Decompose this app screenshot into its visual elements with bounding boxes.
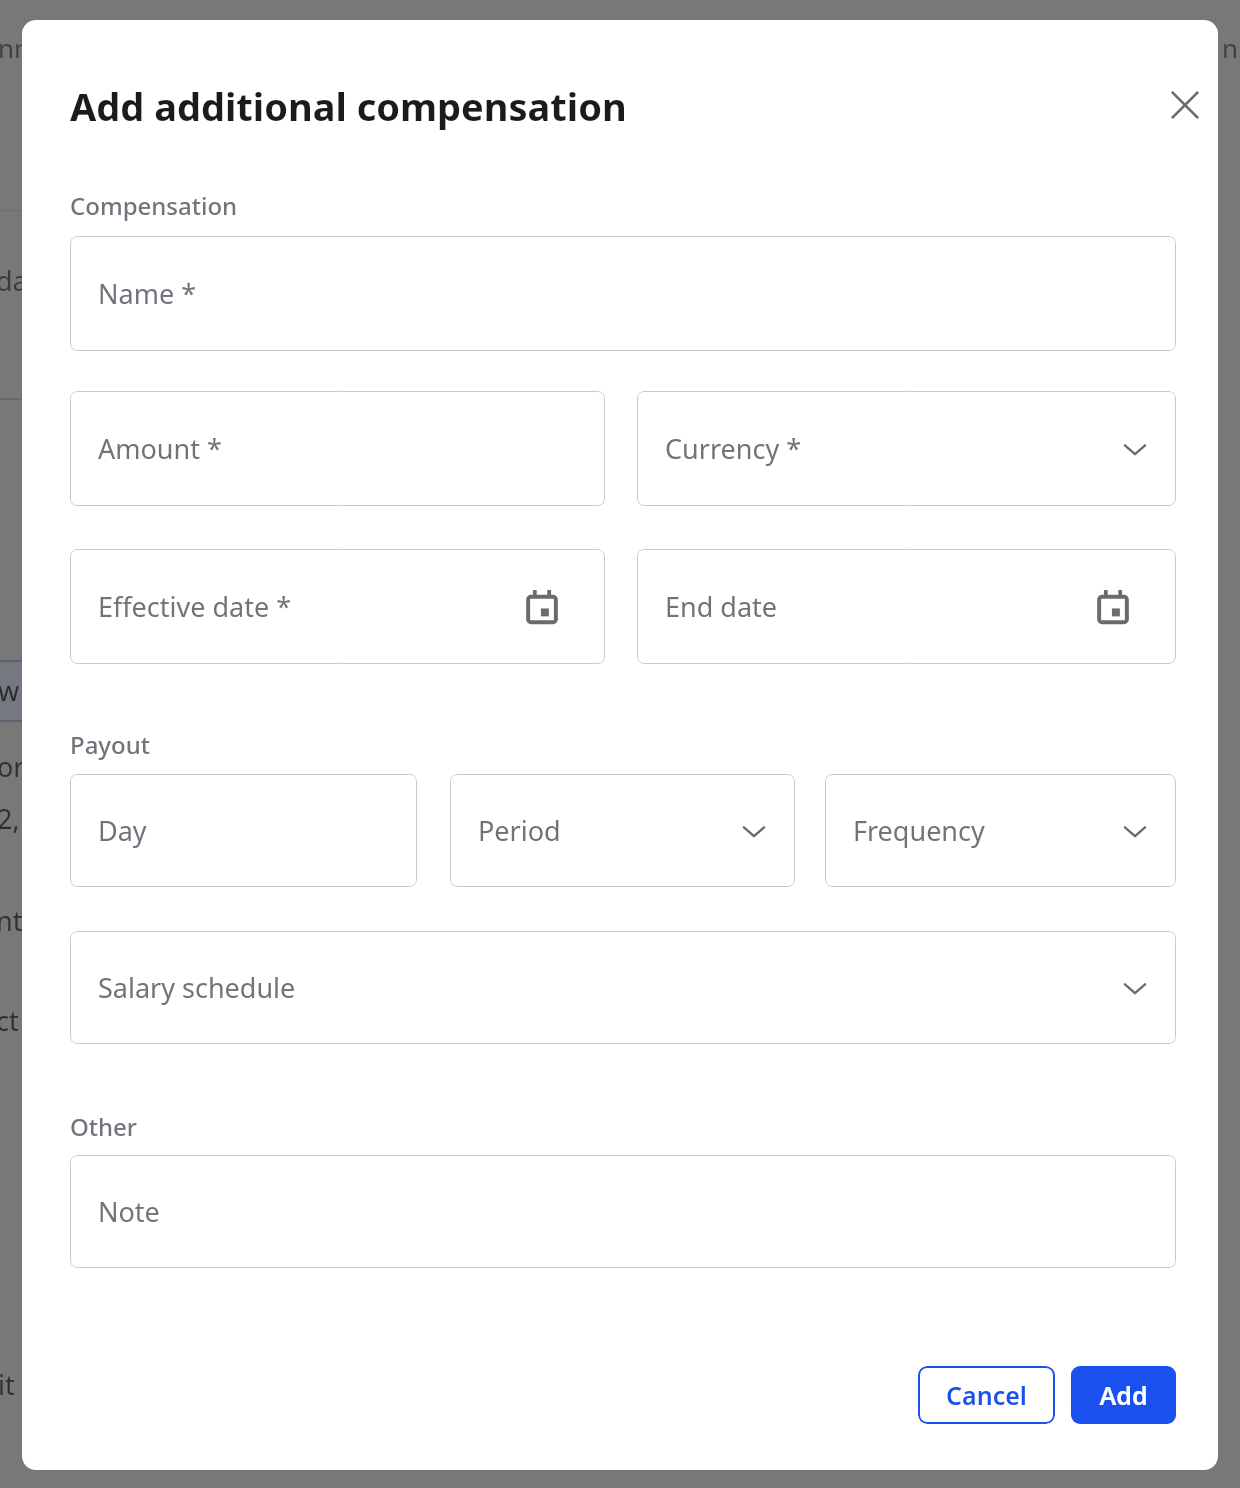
staticText: da	[0, 262, 28, 299]
button[interactable]: Frequency	[825, 774, 1176, 887]
staticText: Amount *	[98, 430, 222, 467]
staticText: or	[0, 748, 25, 785]
button[interactable]: Day	[70, 774, 417, 887]
button[interactable]: Close	[1152, 72, 1218, 138]
button[interactable]: Salary schedule	[70, 931, 1176, 1044]
button[interactable]: End date	[637, 549, 1176, 664]
staticText: Cancel	[946, 1378, 1027, 1412]
staticText: Add	[1099, 1378, 1148, 1412]
staticText: Salary schedule	[98, 969, 296, 1006]
button[interactable]: Currency *	[637, 391, 1176, 506]
staticText: 2,	[0, 800, 20, 837]
staticText: Note	[98, 1193, 160, 1230]
staticText: Period	[478, 812, 561, 849]
staticText: Add additional compensation	[70, 80, 627, 132]
staticText: Payout	[70, 728, 150, 761]
staticText: Compensation	[70, 189, 238, 222]
staticText: it	[0, 1366, 15, 1403]
button[interactable]: Add	[1071, 1366, 1176, 1424]
staticText: ct	[0, 1002, 19, 1039]
staticText: Other	[70, 1110, 137, 1143]
staticText: Frequency	[853, 812, 985, 849]
button[interactable]: Cancel	[918, 1366, 1055, 1424]
button[interactable]: Period	[450, 774, 795, 887]
button[interactable]: Note	[70, 1155, 1176, 1268]
staticText: w	[0, 672, 20, 709]
staticText: Name *	[98, 275, 197, 312]
staticText: End date	[665, 588, 778, 625]
staticText: n	[1222, 30, 1239, 65]
staticText: nn	[0, 30, 31, 65]
button[interactable]: Amount *	[70, 391, 605, 506]
staticText: Day	[98, 812, 147, 849]
button[interactable]: Name *	[70, 236, 1176, 351]
button[interactable]: Effective date *	[70, 549, 605, 664]
staticText: Effective date *	[98, 588, 292, 625]
staticText: nt	[0, 902, 23, 939]
staticText: Currency *	[665, 430, 802, 467]
